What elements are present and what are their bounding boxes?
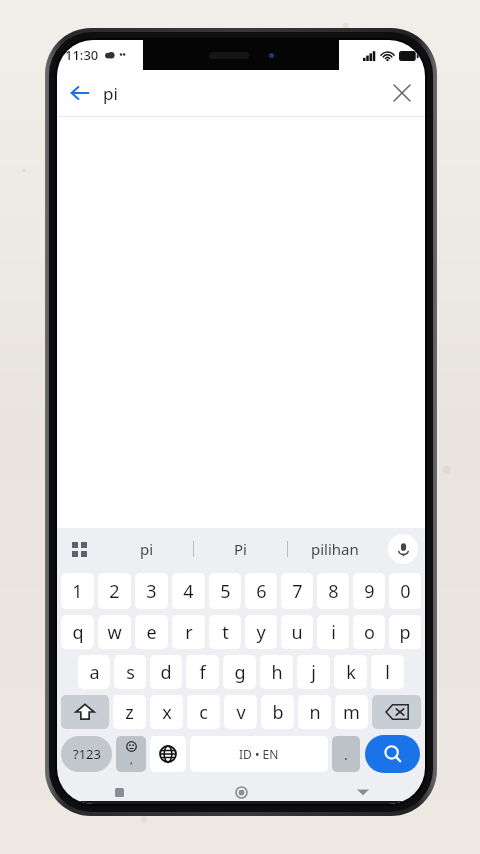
- button[interactable]: Voice input: [381, 528, 425, 570]
- button[interactable]: s: [114, 655, 146, 689]
- staticText: c: [199, 700, 208, 725]
- button[interactable]: 2: [98, 573, 131, 609]
- button[interactable]: 8: [317, 573, 349, 609]
- staticText: i: [331, 620, 336, 645]
- button[interactable]: i: [317, 615, 349, 649]
- button[interactable]: o: [353, 615, 385, 649]
- button[interactable]: Backspace: [372, 695, 421, 729]
- staticText: 5: [220, 579, 231, 604]
- button[interactable]: Emoji and comma: [116, 736, 146, 772]
- button[interactable]: u: [281, 615, 313, 649]
- staticText: y: [256, 620, 266, 645]
- staticText: h: [271, 660, 283, 685]
- staticText: x: [162, 700, 172, 725]
- button[interactable]: r: [172, 615, 205, 649]
- staticText: 6: [256, 579, 267, 604]
- staticText: a: [89, 660, 100, 685]
- staticText: u: [291, 620, 303, 645]
- staticText: pi: [103, 82, 118, 105]
- button[interactable]: Back: [351, 780, 375, 804]
- staticText: .: [344, 745, 348, 764]
- staticText: b: [272, 700, 284, 725]
- staticText: w: [107, 620, 122, 645]
- button[interactable]: f: [186, 655, 219, 689]
- staticText: 11:30: [65, 46, 99, 64]
- button[interactable]: Search: [365, 735, 420, 773]
- button[interactable]: d: [150, 655, 182, 689]
- staticText: s: [126, 660, 135, 685]
- button[interactable]: pi: [103, 70, 379, 116]
- button[interactable]: c: [187, 695, 220, 729]
- button[interactable]: l: [371, 655, 404, 689]
- staticText: f: [199, 660, 206, 685]
- button[interactable]: ID • EN: [190, 736, 328, 772]
- staticText: k: [346, 660, 356, 685]
- staticText: p: [399, 620, 411, 645]
- button[interactable]: Change language: [150, 736, 186, 772]
- button[interactable]: m: [335, 695, 368, 729]
- button[interactable]: ?123: [61, 736, 112, 772]
- button[interactable]: a: [78, 655, 110, 689]
- staticText: 2: [109, 579, 120, 604]
- button[interactable]: 9: [353, 573, 385, 609]
- button[interactable]: Recents: [107, 780, 131, 804]
- staticText: 0: [400, 579, 411, 604]
- button[interactable]: v: [224, 695, 257, 729]
- button[interactable]: g: [223, 655, 256, 689]
- staticText: r: [185, 620, 193, 645]
- staticText: g: [234, 660, 246, 685]
- button[interactable]: 4: [172, 573, 205, 609]
- button[interactable]: q: [61, 615, 94, 649]
- button[interactable]: Apps: [57, 528, 101, 570]
- button[interactable]: 5: [209, 573, 241, 609]
- button[interactable]: 3: [135, 573, 168, 609]
- button[interactable]: Shift: [61, 695, 109, 729]
- button[interactable]: p: [389, 615, 421, 649]
- button[interactable]: Clear: [379, 70, 425, 116]
- button[interactable]: 6: [245, 573, 277, 609]
- staticText: d: [160, 660, 172, 685]
- staticText: j: [311, 660, 316, 685]
- staticText: q: [72, 620, 84, 645]
- button[interactable]: w: [98, 615, 131, 649]
- button[interactable]: Back: [57, 70, 103, 116]
- staticText: m: [343, 700, 360, 725]
- button[interactable]: pilihan: [288, 528, 381, 570]
- staticText: 8: [328, 579, 339, 604]
- staticText: n: [309, 700, 321, 725]
- staticText: l: [385, 660, 390, 685]
- button[interactable]: x: [150, 695, 183, 729]
- button[interactable]: Home: [229, 780, 253, 804]
- staticText: ?123: [73, 745, 101, 763]
- staticText: Pi: [234, 539, 247, 559]
- staticText: z: [125, 700, 134, 725]
- button[interactable]: 1: [61, 573, 94, 609]
- staticText: t: [222, 620, 229, 645]
- button[interactable]: h: [260, 655, 293, 689]
- button[interactable]: k: [334, 655, 367, 689]
- button[interactable]: z: [113, 695, 146, 729]
- staticText: 1: [72, 579, 83, 604]
- staticText: 4: [183, 579, 194, 604]
- button[interactable]: b: [261, 695, 294, 729]
- button[interactable]: n: [298, 695, 331, 729]
- button[interactable]: 7: [281, 573, 313, 609]
- button[interactable]: t: [209, 615, 241, 649]
- staticText: o: [364, 620, 375, 645]
- button[interactable]: j: [297, 655, 330, 689]
- button[interactable]: y: [245, 615, 277, 649]
- staticText: 9: [364, 579, 375, 604]
- button[interactable]: e: [135, 615, 168, 649]
- staticText: v: [236, 700, 246, 725]
- staticText: pi: [140, 539, 154, 559]
- staticText: ID • EN: [239, 746, 279, 762]
- staticText: 3: [146, 579, 157, 604]
- staticText: ,: [130, 752, 133, 767]
- staticText: e: [146, 620, 157, 645]
- staticText: 7: [292, 579, 303, 604]
- button[interactable]: pi: [101, 528, 193, 570]
- staticText: pilihan: [311, 539, 359, 559]
- button[interactable]: 0: [389, 573, 421, 609]
- button[interactable]: Pi: [194, 528, 287, 570]
- button[interactable]: .: [332, 736, 360, 772]
